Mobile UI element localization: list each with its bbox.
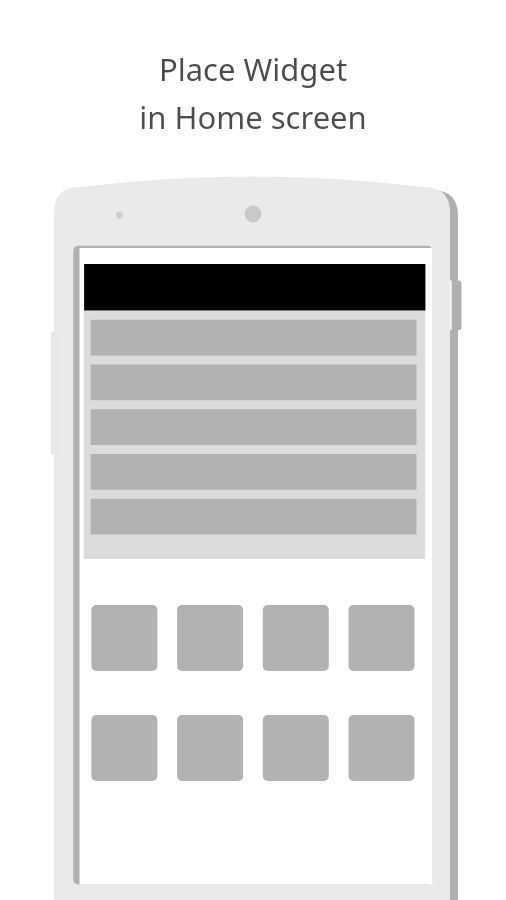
button[interactable]: Place the widget on your Home screen <box>50 170 466 900</box>
staticText: Place Widget in Home screen <box>0 48 506 138</box>
